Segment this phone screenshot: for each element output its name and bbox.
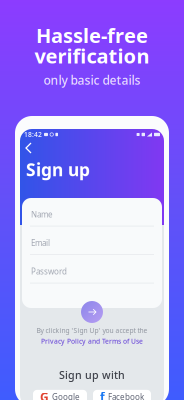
staticText: G [40,389,49,400]
button[interactable]: Name [22,198,162,226]
staticText: Password [31,266,67,277]
button[interactable]: f [93,390,151,400]
staticText: f [100,389,105,400]
staticText: Hassle-free [36,22,148,49]
staticText: By clicking 'Sign Up' you accept the [36,326,147,335]
button[interactable]: G [33,390,87,400]
staticText: Google [52,392,80,400]
staticText: Sign up with [59,368,125,382]
staticText: Privacy Policy and Terms of Use [41,337,143,346]
button[interactable]: Password [22,255,162,283]
staticText: 18:42 [24,130,42,139]
button[interactable]: Privacy Policy and Terms of Use [41,337,143,346]
staticText: only basic details [43,72,140,88]
staticText: verification [34,43,149,69]
button[interactable]: Email [22,226,162,255]
button[interactable]: Continue [81,301,103,323]
button[interactable]: Back [22,140,38,156]
staticText: Name [31,209,53,220]
staticText: Sign up [26,158,90,181]
staticText: Email [31,238,50,248]
staticText: Facebook [108,392,144,400]
